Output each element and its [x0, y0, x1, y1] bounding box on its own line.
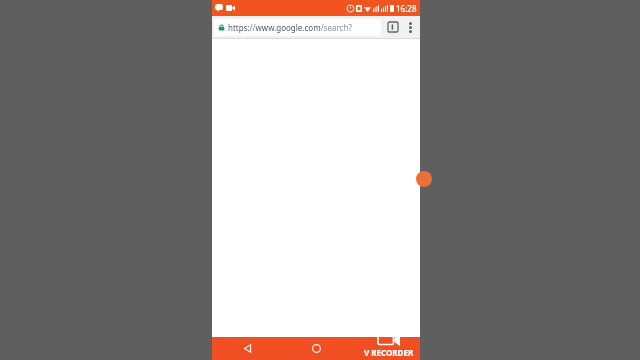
- button[interactable]: https://www.google.com/search?client=ms: [214, 19, 381, 36]
- staticText: 16:28: [396, 3, 417, 14]
- button[interactable]: Recents: [351, 337, 420, 360]
- button[interactable]: Tabs: [384, 18, 402, 36]
- button[interactable]: More options: [402, 19, 418, 35]
- button[interactable]: Recorder bubble: [416, 171, 432, 187]
- staticText: https://www.google.com/search?client=ms: [228, 22, 377, 33]
- button[interactable]: Back: [212, 337, 282, 360]
- button[interactable]: Home: [282, 337, 351, 360]
- staticText: V RECORDER: [364, 347, 414, 358]
